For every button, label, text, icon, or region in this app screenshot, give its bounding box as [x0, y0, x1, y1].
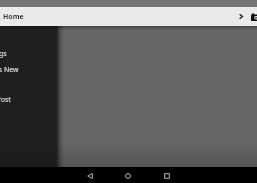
button[interactable]: Home: [120, 168, 136, 183]
button[interactable]: More options: [235, 10, 248, 23]
staticText: Home: [3, 12, 24, 22]
button[interactable]: Recents: [159, 168, 175, 183]
staticText: New Post: [0, 95, 11, 105]
staticText: What's New: [0, 65, 19, 75]
button[interactable]: Camera: [245, 10, 257, 23]
button[interactable]: What's New: [0, 62, 57, 78]
staticText: Settings: [0, 49, 7, 59]
button[interactable]: Back: [82, 168, 98, 183]
button[interactable]: Settings: [0, 46, 57, 62]
button[interactable]: New Post: [0, 92, 57, 108]
